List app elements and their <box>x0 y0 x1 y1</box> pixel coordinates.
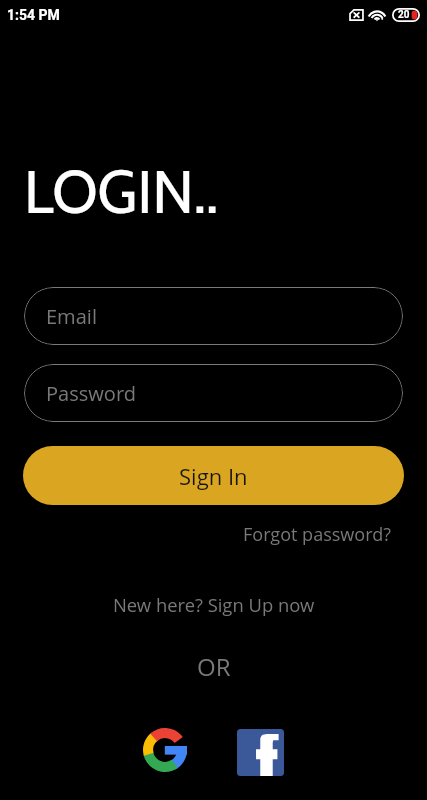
staticText: LOGIN.. <box>24 156 219 228</box>
button[interactable]: Sign in with Google <box>141 728 189 772</box>
button[interactable]: New here? Sign Up now <box>113 592 315 617</box>
staticText: Password <box>46 380 136 407</box>
staticText: 1:54 PM <box>7 7 60 23</box>
staticText: Sign In <box>179 461 248 491</box>
button[interactable]: Sign in with Facebook <box>237 729 284 776</box>
staticText: Email <box>46 303 97 330</box>
staticText: OR <box>197 650 231 683</box>
button[interactable]: Forgot password? <box>243 522 391 547</box>
button[interactable]: Sign In <box>23 446 404 505</box>
staticText: 20 <box>398 9 410 21</box>
button[interactable]: Email <box>24 287 403 345</box>
button[interactable]: Password <box>24 364 403 422</box>
